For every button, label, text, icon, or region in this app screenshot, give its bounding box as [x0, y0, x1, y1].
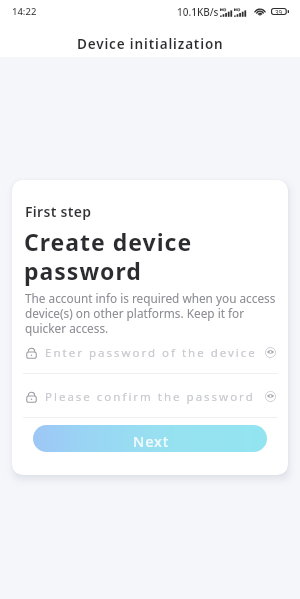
button[interactable]: Show password: [262, 388, 279, 405]
button[interactable]: Please confirm the password: [26, 384, 277, 409]
staticText: Create device password: [24, 226, 193, 287]
button[interactable]: Enter password of the device: [26, 340, 277, 365]
button[interactable]: Next: [33, 425, 267, 452]
staticText: 39: [275, 8, 283, 15]
staticText: Please confirm the password: [45, 389, 255, 405]
staticText: Device initialization: [77, 35, 224, 53]
staticText: Next: [133, 431, 170, 451]
staticText: First step: [25, 202, 92, 221]
button[interactable]: Show password: [262, 344, 279, 361]
staticText: The account info is required when you ac…: [25, 290, 277, 336]
staticText: 10.1KB/s: [177, 5, 219, 19]
staticText: Enter password of the device: [45, 345, 257, 361]
staticText: 14:22: [12, 5, 37, 18]
